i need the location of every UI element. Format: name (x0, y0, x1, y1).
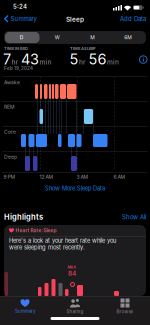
button[interactable]: Summary (0, 299, 50, 314)
staticText: 5 (69, 50, 78, 68)
staticText: 12 AM (39, 174, 53, 180)
staticText: min (107, 58, 119, 66)
staticText: 84 (68, 269, 76, 277)
button[interactable]: Sharing (50, 298, 100, 314)
staticText: D (20, 34, 24, 40)
staticText: 9 PM (3, 174, 15, 180)
staticText: MAX (67, 265, 76, 269)
staticText: 43 (21, 50, 39, 68)
staticText: 56 (88, 50, 106, 68)
staticText: Add Data (120, 15, 146, 22)
staticText: Highlights (4, 212, 43, 222)
staticText: Summary (10, 15, 36, 22)
staticText: hr (79, 58, 85, 66)
staticText: Heart Rate: Sleep (15, 227, 56, 233)
button[interactable]: M (75, 31, 110, 44)
staticText: Awake (4, 79, 20, 85)
staticText: 6M (124, 34, 132, 40)
button[interactable]: D (4, 31, 39, 44)
staticText: TIME ASLEEP (70, 46, 96, 51)
button[interactable]: Show All (122, 213, 146, 221)
staticText: Here's a look at your heart rate while y… (9, 237, 116, 251)
staticText: M (90, 34, 95, 40)
staticText: Show All (122, 213, 146, 221)
staticText: Feb 19, 2024 (4, 66, 33, 71)
button[interactable]: Add Data (120, 15, 146, 22)
staticText: Show More Sleep Data (45, 185, 105, 192)
button[interactable]: W (39, 31, 75, 44)
staticText: TIME IN BED (4, 46, 28, 51)
staticText: Browse (116, 309, 133, 314)
staticText: Deep (4, 154, 17, 160)
staticText: min (39, 58, 51, 66)
staticText: Core (4, 129, 16, 135)
staticText: Summary (15, 308, 35, 314)
button[interactable]: Summary (4, 15, 36, 22)
staticText: 7 (3, 50, 11, 68)
staticText: Sharing (66, 309, 83, 314)
staticText: hr (11, 58, 17, 66)
staticText: Sleep (66, 15, 84, 23)
staticText: REM (4, 104, 15, 110)
staticText: 5:24 (13, 3, 27, 10)
button[interactable]: Heart Rate: Sleep (4, 225, 150, 325)
staticText: W (55, 34, 60, 40)
staticText: 6 AM (113, 174, 125, 180)
staticText: 3 AM (76, 174, 88, 180)
button[interactable]: Browse (100, 298, 150, 314)
button[interactable]: Show More Sleep Data (0, 185, 150, 192)
button[interactable]: 6M (110, 31, 146, 44)
button[interactable]: About Sleep (139, 56, 147, 63)
